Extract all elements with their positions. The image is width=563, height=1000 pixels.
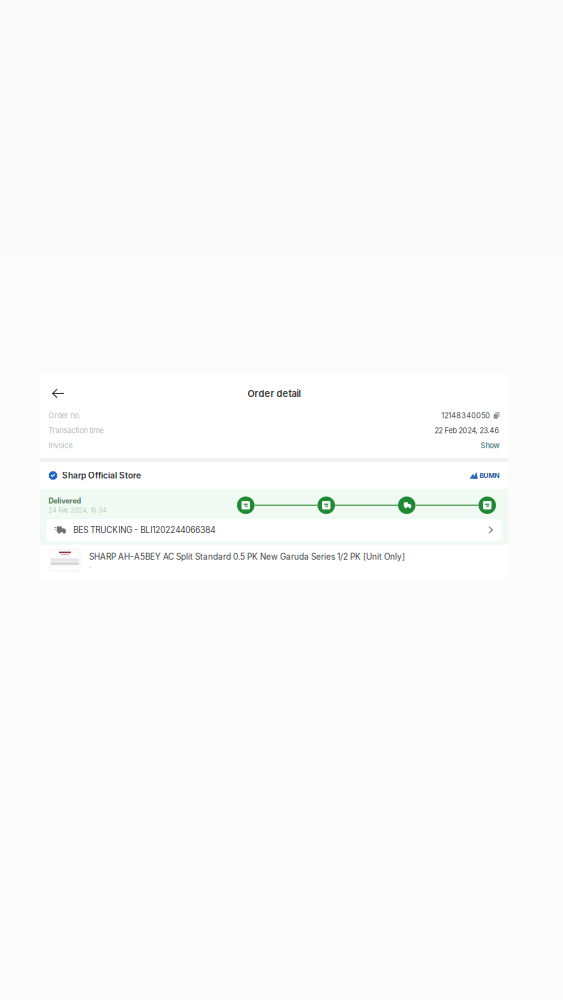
staticText: Transaction time (48, 426, 103, 435)
staticText: Order detail (247, 388, 300, 399)
staticText: Show (480, 441, 499, 450)
staticText: 12148340050 (441, 411, 490, 420)
button[interactable]: Copy order number (494, 412, 499, 419)
button[interactable]: Show (480, 441, 499, 450)
button[interactable]: SHARP AH-A5BEY AC Split Standard 0.5 PK … (40, 545, 508, 578)
staticText: BUMN (479, 471, 499, 480)
staticText: BES TRUCKING - BLI1202244066384 (73, 525, 215, 535)
staticText: Invoice (48, 441, 72, 450)
staticText: - (89, 563, 92, 571)
staticText: Order no. (48, 411, 80, 420)
staticText: SHARP AH-A5BEY AC Split Standard 0.5 PK … (89, 552, 405, 562)
button[interactable]: BES TRUCKING - BLI1202244066384 (46, 519, 502, 541)
staticText: 22 Feb 2024, 23.46 (434, 426, 499, 435)
button[interactable]: Back (47, 383, 69, 403)
button[interactable]: Sharp Official Store (40, 462, 508, 489)
staticText: Sharp Official Store (62, 470, 141, 481)
staticText: 24 Feb 2024, 10.34 (48, 507, 106, 514)
staticText: Delivered (48, 496, 81, 505)
